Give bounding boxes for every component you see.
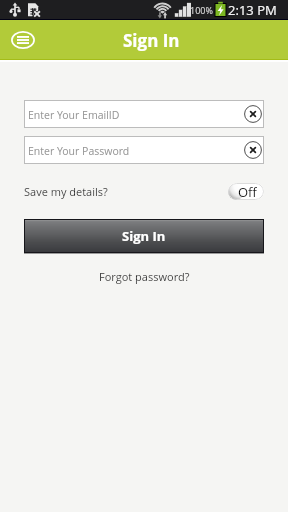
staticText: Off [238,183,257,200]
button[interactable]: Enter Your Password [24,136,264,164]
staticText: Save my details? [24,184,108,199]
staticText: 2:13 PM [228,1,277,19]
button[interactable]: Clear text [244,105,262,123]
button[interactable]: Save my details, Off [228,183,264,200]
button[interactable]: Sign In [24,219,264,253]
staticText: Sign In [122,227,166,245]
button[interactable]: Clear text [244,141,262,159]
button[interactable]: Open navigation menu [11,31,35,49]
staticText: Enter Your EmailID [28,108,120,122]
staticText: Enter Your Password [28,144,130,158]
button[interactable]: Forgot password? [99,269,190,284]
staticText: 100% [190,4,213,16]
button[interactable]: Enter Your EmailID [24,100,264,128]
staticText: Sign In [123,29,180,52]
